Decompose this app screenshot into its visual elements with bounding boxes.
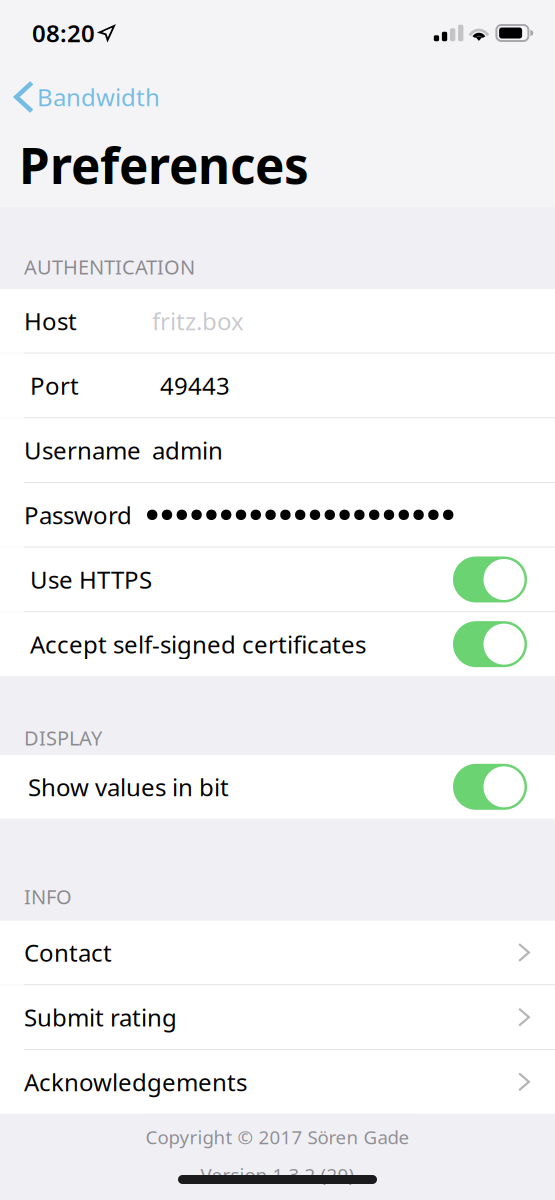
button[interactable]: Use HTTPS bbox=[0, 548, 555, 611]
staticText: Version 1.3.2 (29) bbox=[200, 1162, 354, 1187]
button[interactable]: Contact bbox=[0, 921, 555, 984]
staticText: Copyright © 2017 Sören Gade bbox=[145, 1125, 409, 1149]
staticText: Acknowledgements bbox=[24, 1066, 247, 1098]
button[interactable]: Show values in bit bbox=[0, 755, 555, 819]
button[interactable]: Password bbox=[0, 483, 555, 547]
staticText: Accept self-signed certificates bbox=[30, 628, 366, 660]
staticText: DISPLAY bbox=[24, 724, 102, 751]
button[interactable]: Bandwidth bbox=[0, 66, 555, 122]
staticText: 08:20 bbox=[32, 17, 95, 49]
staticText: Show values in bit bbox=[28, 771, 229, 803]
button[interactable]: Acknowledgements bbox=[0, 1050, 555, 1114]
button[interactable]: Accept self-signed certificates bbox=[0, 612, 555, 676]
staticText: Submit rating bbox=[24, 1001, 177, 1033]
staticText: AUTHENTICATION bbox=[24, 253, 195, 280]
staticText: Host bbox=[24, 305, 77, 337]
button[interactable]: Host bbox=[0, 289, 555, 353]
staticText: admin bbox=[152, 434, 223, 466]
staticText: Contact bbox=[24, 937, 112, 968]
staticText: Username bbox=[24, 434, 141, 466]
staticText: Port bbox=[30, 370, 79, 401]
staticText: INFO bbox=[24, 883, 72, 910]
staticText: Use HTTPS bbox=[30, 564, 152, 595]
staticText: Password bbox=[24, 499, 132, 531]
button[interactable]: Port bbox=[0, 354, 555, 417]
button[interactable]: Submit rating bbox=[0, 985, 555, 1049]
staticText: 49443 bbox=[160, 370, 230, 401]
staticText: Preferences bbox=[19, 132, 309, 197]
staticText: fritz.box bbox=[152, 305, 244, 337]
button[interactable]: Username bbox=[0, 418, 555, 482]
staticText: Bandwidth bbox=[37, 81, 160, 113]
